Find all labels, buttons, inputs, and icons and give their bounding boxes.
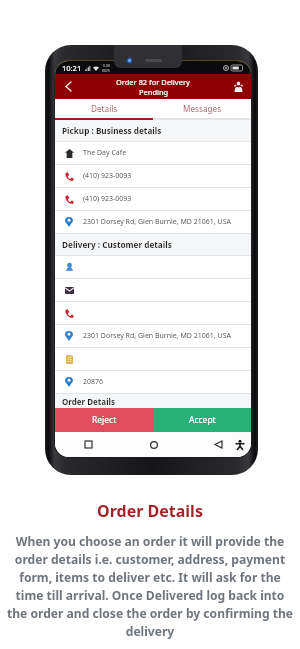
staticText: Delivery : Customer details: [62, 239, 172, 250]
button[interactable]: The Day Cafe: [55, 142, 251, 164]
button[interactable]: Recent apps: [55, 432, 121, 457]
staticText: Accept: [189, 414, 216, 426]
button[interactable]: 2301 Dorsey Rd, Glen Burnie, MD 21061, U…: [55, 325, 251, 347]
button[interactable]: 20876: [55, 371, 251, 393]
staticText: Reject: [92, 414, 117, 426]
staticText: 0.00: [103, 63, 110, 68]
staticText: KB/S: [102, 68, 110, 73]
staticText: (410) 923-0093: [83, 171, 132, 181]
staticText: Pickup : Business details: [62, 125, 162, 136]
staticText: The Day Cafe: [83, 148, 127, 158]
staticText: Order Details: [97, 500, 203, 522]
button[interactable]: Messages: [153, 99, 251, 118]
button[interactable]: [55, 348, 251, 370]
button[interactable]: Reject: [55, 408, 153, 432]
button[interactable]: [55, 279, 251, 301]
staticText: Order 82 for Delivery: [116, 77, 191, 87]
staticText: 10:21: [62, 63, 82, 73]
staticText: Messages: [183, 103, 222, 114]
staticText: (410) 923-0093: [83, 194, 132, 204]
button[interactable]: Details: [55, 99, 153, 118]
button[interactable]: (410) 923-0093: [55, 165, 251, 187]
staticText: Order Details: [62, 396, 115, 407]
staticText: 2301 Dorsey Rd, Glen Burnie, MD 21061, U…: [83, 217, 231, 227]
button[interactable]: [55, 256, 251, 278]
button[interactable]: (410) 923-0093: [55, 188, 251, 210]
staticText: 20876: [83, 377, 104, 387]
button[interactable]: Home: [121, 432, 186, 457]
button[interactable]: Back: [186, 432, 251, 457]
staticText: Pending: [139, 87, 169, 97]
staticText: When you choose an order it will provide…: [6, 533, 294, 639]
staticText: 2301 Dorsey Rd, Glen Burnie, MD 21061, U…: [83, 331, 231, 341]
button[interactable]: Accessibility: [234, 439, 245, 450]
button[interactable]: 2301 Dorsey Rd, Glen Burnie, MD 21061, U…: [55, 211, 251, 233]
button[interactable]: Account: [225, 74, 251, 99]
staticText: Details: [91, 103, 118, 114]
button[interactable]: Accept: [153, 408, 251, 432]
button[interactable]: [55, 302, 251, 324]
button[interactable]: Back: [55, 74, 82, 99]
